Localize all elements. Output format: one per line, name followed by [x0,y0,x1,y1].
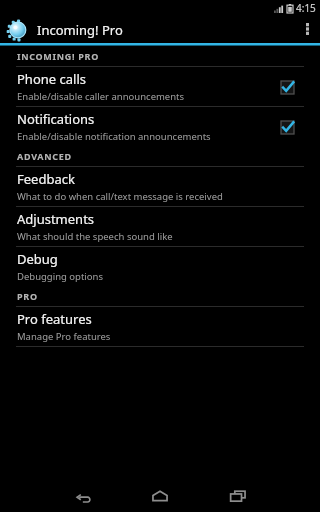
staticText: What to do when call/text message is rec… [17,190,223,203]
staticText: Manage Pro features [17,330,111,343]
staticText: What should the speech sound like [17,230,173,243]
staticText: ADVANCED [17,150,72,162]
button[interactable]: Recent apps [199,480,277,512]
staticText: Enable/disable caller announcements [17,90,185,103]
button[interactable]: Notifications [0,107,320,146]
staticText: Debug [17,250,58,268]
staticText: Pro features [17,310,92,328]
staticText: Phone calls [17,70,86,88]
button[interactable]: Pro features [0,307,320,346]
button[interactable]: Back [43,480,121,512]
staticText: INCOMING! PRO [17,50,99,62]
button[interactable]: More options [294,16,320,43]
button[interactable]: Phone calls [0,67,320,106]
staticText: Enable/disable notification announcement… [17,130,211,143]
staticText: Debugging options [17,270,103,283]
staticText: Feedback [17,170,75,188]
button[interactable]: Home [121,480,199,512]
staticText: Notifications [17,110,95,128]
staticText: Incoming! Pro [37,21,123,39]
button[interactable]: Debug [0,247,320,286]
staticText: 4:15 [296,1,316,15]
staticText: Adjustments [17,210,95,228]
button[interactable]: Adjustments [0,207,320,246]
button[interactable]: Feedback [0,167,320,206]
staticText: PRO [17,290,38,302]
